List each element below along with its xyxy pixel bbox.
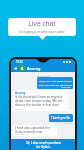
button[interactable]: Live chat	[8, 18, 76, 36]
staticText: I have also uploaded the study material …	[15, 126, 56, 134]
staticText: 10:27 AM	[15, 133, 25, 136]
staticText: Anurag	[15, 91, 26, 95]
staticText: Anurag	[27, 66, 41, 71]
staticText: 06 Jan 2018	[37, 74, 50, 77]
staticText: in a group or with your tutor	[19, 29, 65, 34]
staticText: 10:20 AM	[61, 86, 71, 89]
staticText: Hello Sir! I had some doubts from your l…	[39, 79, 72, 87]
staticText: Hello Anupriya! I have arranged a doubt …	[15, 95, 68, 107]
button[interactable]: Thank you Sir	[49, 114, 73, 122]
button[interactable]: Sir, I also need questions for Optics.	[11, 139, 75, 150]
button[interactable]: Hello Sir! I had some doubts from your l…	[37, 77, 73, 89]
button[interactable]: Anurag	[13, 90, 69, 111]
staticText: Live chat	[28, 19, 56, 28]
staticText: Thank you Sir	[51, 116, 71, 120]
staticText: Sir, I also need questions for Optics.	[26, 141, 61, 149]
staticText: 10:20	[16, 60, 23, 64]
button[interactable]: I have also uploaded the study material …	[13, 125, 57, 136]
staticText: 10:25 AM	[15, 108, 25, 111]
staticText: 10:26 AM	[64, 122, 74, 125]
other: Back	[13, 66, 18, 71]
button[interactable]: Back	[11, 64, 75, 72]
staticText: A	[21, 66, 24, 71]
